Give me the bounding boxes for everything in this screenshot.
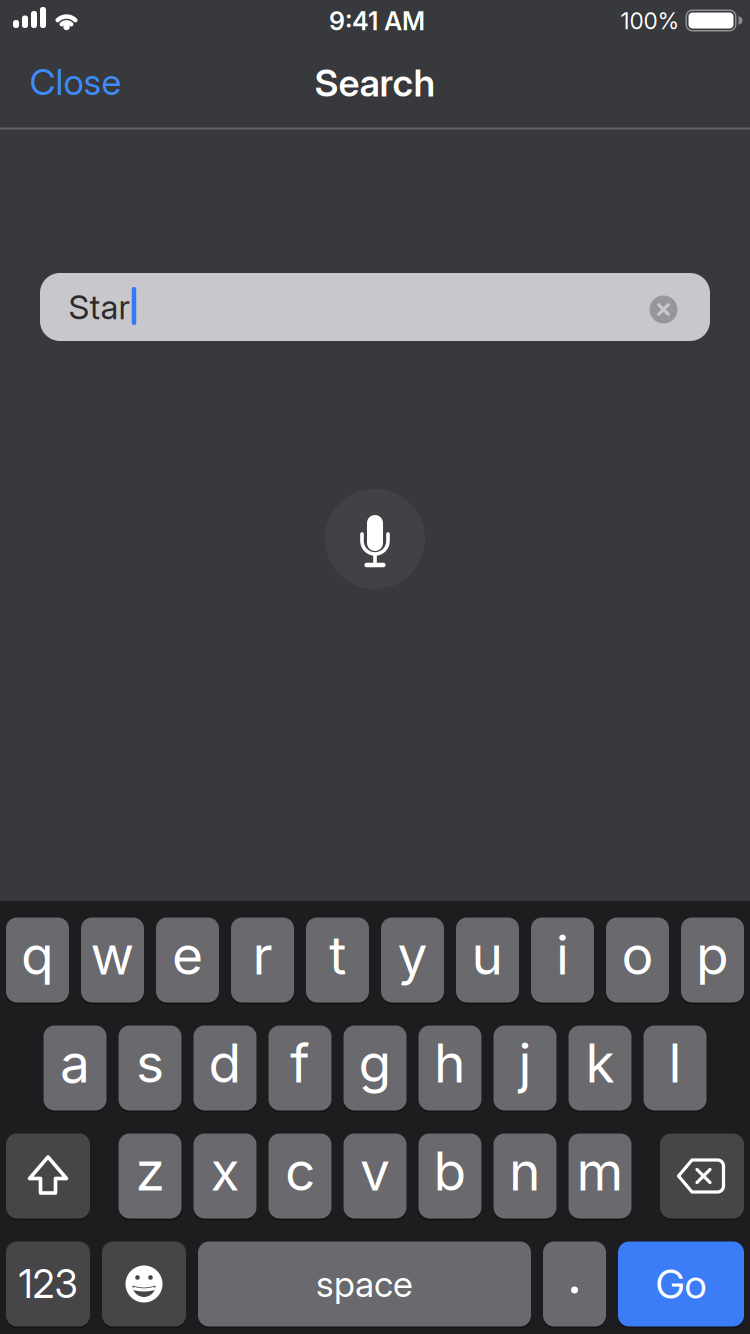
staticText: o	[621, 923, 653, 987]
staticText: n	[509, 1139, 541, 1203]
button[interactable]: p	[681, 917, 744, 1002]
staticText: g	[358, 1031, 391, 1095]
button[interactable]: Dictate	[325, 489, 425, 589]
staticText: k	[585, 1031, 614, 1095]
staticText: e	[172, 923, 203, 987]
button[interactable]: z	[118, 1133, 181, 1218]
staticText: q	[21, 923, 54, 987]
staticText: a	[60, 1031, 90, 1095]
button[interactable]: g	[343, 1025, 406, 1110]
button[interactable]: k	[568, 1025, 631, 1110]
staticText: r	[252, 923, 272, 987]
staticText: Search	[314, 60, 435, 106]
staticText: z	[135, 1139, 164, 1203]
button[interactable]: 123	[6, 1241, 90, 1326]
staticText: y	[397, 923, 427, 987]
staticText: i	[556, 923, 569, 987]
button[interactable]: Star	[40, 273, 710, 341]
staticText: b	[433, 1139, 466, 1203]
button[interactable]: r	[231, 917, 294, 1002]
button[interactable]: b	[418, 1133, 481, 1218]
button[interactable]: t	[306, 917, 369, 1002]
staticText: 9:41 AM	[329, 6, 425, 36]
button[interactable]: y	[381, 917, 444, 1002]
button[interactable]: q	[6, 917, 69, 1002]
staticText: 100%	[620, 7, 679, 35]
button[interactable]: Go	[618, 1241, 744, 1326]
button[interactable]: o	[606, 917, 669, 1002]
button[interactable]: Shift	[6, 1133, 90, 1218]
button[interactable]: v	[343, 1133, 406, 1218]
staticText: 123	[18, 1261, 77, 1307]
staticText: l	[668, 1031, 681, 1095]
staticText: Go	[655, 1260, 706, 1308]
staticText: d	[208, 1031, 241, 1095]
staticText: v	[360, 1139, 390, 1203]
button[interactable]: Emoji	[102, 1241, 186, 1326]
staticText: space	[316, 1262, 413, 1306]
staticText: j	[518, 1031, 531, 1095]
staticText: c	[285, 1139, 315, 1203]
staticText: Star	[68, 287, 129, 327]
staticText: m	[576, 1139, 623, 1203]
button[interactable]: Delete	[660, 1133, 744, 1218]
button[interactable]: i	[531, 917, 594, 1002]
staticText: h	[434, 1031, 466, 1095]
button[interactable]: e	[156, 917, 219, 1002]
button[interactable]: a	[43, 1025, 106, 1110]
staticText: x	[210, 1139, 239, 1203]
button[interactable]: m	[568, 1133, 631, 1218]
button[interactable]: w	[81, 917, 144, 1002]
button[interactable]: s	[118, 1025, 181, 1110]
staticText: s	[136, 1031, 164, 1095]
button[interactable]: j	[493, 1025, 556, 1110]
button[interactable]: Close	[29, 60, 121, 104]
button[interactable]: Clear text	[649, 295, 677, 323]
staticText: p	[696, 923, 729, 987]
button[interactable]: f	[268, 1025, 331, 1110]
staticText: f	[290, 1031, 310, 1095]
button[interactable]: c	[268, 1133, 331, 1218]
staticText: Close	[29, 60, 121, 104]
button[interactable]: n	[493, 1133, 556, 1218]
staticText: w	[90, 923, 134, 987]
button[interactable]: l	[643, 1025, 706, 1110]
button[interactable]: h	[418, 1025, 481, 1110]
button[interactable]: Period	[543, 1241, 606, 1326]
button[interactable]: d	[193, 1025, 256, 1110]
staticText: t	[329, 923, 346, 987]
staticText: u	[471, 923, 503, 987]
button[interactable]: u	[456, 917, 519, 1002]
button[interactable]: x	[193, 1133, 256, 1218]
button[interactable]: space	[198, 1241, 531, 1326]
